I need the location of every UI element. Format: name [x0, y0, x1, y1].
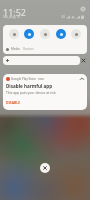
button[interactable]: Dismiss — [80, 57, 86, 63]
staticText: DISABLE — [6, 100, 21, 105]
button[interactable]: Google Play Store — [3, 74, 87, 110]
button[interactable]: Internet — [9, 29, 19, 39]
staticText: Sat, Aug 10 — [3, 15, 20, 19]
staticText: 4G — [61, 15, 65, 19]
button[interactable]: Collapse — [79, 76, 85, 82]
staticText: Disable harmful app — [6, 83, 53, 89]
button[interactable]: Do not disturb — [40, 29, 50, 39]
staticText: Media — [11, 47, 20, 51]
button[interactable]: Bluetooth — [24, 29, 34, 39]
button[interactable] — [3, 56, 80, 65]
staticText: Devices — [23, 47, 34, 51]
button[interactable]: Settings — [79, 5, 87, 13]
button[interactable]: DISABLE — [6, 100, 21, 105]
button[interactable]: Flashlight — [56, 29, 66, 39]
staticText: This app puts your device at risk — [6, 90, 56, 94]
staticText: 11:52 — [3, 6, 27, 18]
button[interactable]: Clear all notifications — [40, 163, 50, 173]
button[interactable]: Auto rotate — [71, 29, 81, 39]
staticText: now — [38, 77, 44, 81]
staticText: Google Play Store — [11, 77, 36, 81]
